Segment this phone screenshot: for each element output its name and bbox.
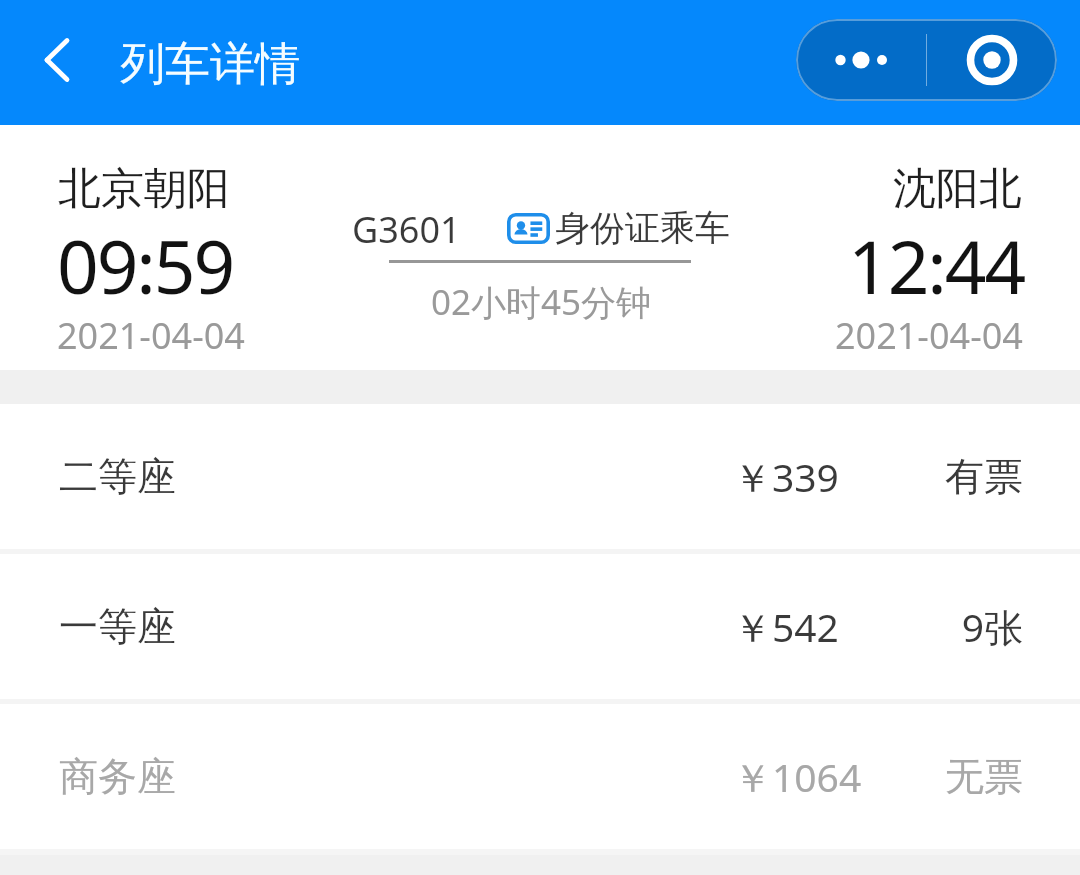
staticText: 一等座 <box>59 602 176 651</box>
staticText: ￥1064 <box>733 750 862 803</box>
staticText: ￥339 <box>733 450 839 503</box>
staticText: 9张 <box>961 600 1023 653</box>
button[interactable]: Back <box>22 24 94 96</box>
staticText: 二等座 <box>59 452 176 501</box>
button[interactable]: 商务座 <box>0 704 1080 849</box>
staticText: 有票 <box>945 452 1023 501</box>
staticText: 沈阳北 <box>893 162 1022 216</box>
button[interactable]: More options <box>796 19 926 101</box>
staticText: 2021-04-04 <box>835 311 1023 360</box>
staticText: 02小时45分钟 <box>431 278 652 326</box>
staticText: 商务座 <box>59 752 176 801</box>
staticText: 北京朝阳 <box>58 162 230 216</box>
staticText: 12:44 <box>848 216 1025 315</box>
button[interactable]: 一等座 <box>0 554 1080 699</box>
button[interactable]: Close mini program <box>927 19 1057 101</box>
staticText: ￥542 <box>733 600 839 653</box>
staticText: 身份证乘车 <box>555 206 730 250</box>
button[interactable]: 二等座 <box>0 404 1080 549</box>
staticText: 无票 <box>945 752 1023 801</box>
staticText: 列车详情 <box>120 36 300 93</box>
staticText: 2021-04-04 <box>57 311 245 360</box>
staticText: 09:59 <box>57 216 234 315</box>
staticText: G3601 <box>352 205 461 254</box>
